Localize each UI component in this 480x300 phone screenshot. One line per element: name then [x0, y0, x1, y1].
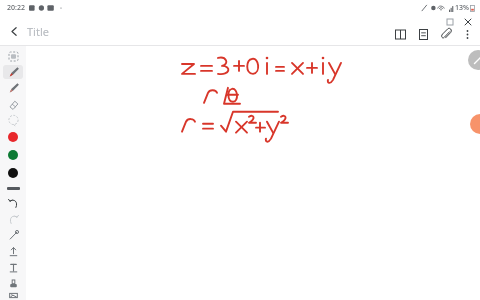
button[interactable]: Green colour: [6, 148, 20, 162]
button[interactable]: Lasso: [3, 113, 23, 127]
staticText: Title: [27, 24, 49, 39]
button[interactable]: Insert: [3, 244, 23, 258]
staticText: 13%: [455, 3, 469, 13]
button[interactable]: Image: [3, 292, 23, 299]
button[interactable]: Eyedropper: [3, 228, 23, 242]
button[interactable]: Stroke width: [7, 187, 20, 190]
button[interactable]: Book view: [392, 26, 408, 42]
button[interactable]: Notes: [415, 26, 431, 42]
button[interactable]: Back: [4, 21, 24, 41]
button[interactable]: Black colour: [6, 166, 20, 180]
button[interactable]: Text: [3, 260, 23, 274]
button[interactable]: Stamp: [3, 276, 23, 290]
staticText: 20:22: [7, 3, 25, 13]
button[interactable]: Quick action: [470, 114, 480, 134]
button[interactable]: Edit: [468, 50, 480, 70]
button[interactable]: Eraser: [3, 97, 23, 111]
button[interactable]: Close: [462, 16, 474, 28]
button[interactable]: Undo: [3, 196, 23, 210]
button[interactable]: More options: [459, 26, 475, 42]
button[interactable]: Red colour: [6, 130, 20, 144]
button[interactable]: Select: [3, 49, 23, 63]
button[interactable]: Pen: [3, 65, 23, 79]
button[interactable]: Attach: [438, 26, 454, 42]
button[interactable]: Marker: [3, 81, 23, 95]
button[interactable]: Restore: [444, 16, 456, 28]
button[interactable]: Redo: [3, 212, 23, 226]
